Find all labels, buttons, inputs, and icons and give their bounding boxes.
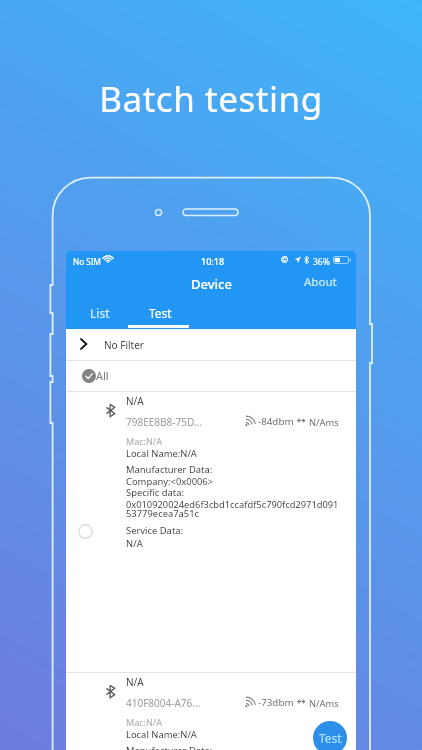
button[interactable]: Test [313,721,347,750]
staticText: 53779ecea7a51c [126,507,200,520]
staticText: Company:<0x0006> [126,475,214,488]
staticText: N/A [126,675,144,689]
staticText: 10:18 [201,255,225,267]
button[interactable]: Test [130,301,191,329]
staticText: 0x010920024ed6f3cbd1ccafdf5c790fcd2971d0… [126,498,339,511]
staticText: -84dbm [258,415,294,428]
staticText: All [96,368,109,383]
staticText: Test [319,730,342,746]
staticText: Test [149,305,172,321]
staticText: 798EE8B8-75D... [126,415,202,429]
button[interactable]: About [297,272,344,292]
staticText: N/A [126,537,143,550]
button[interactable]: List [69,301,130,329]
button[interactable]: N/A [66,672,356,750]
staticText: About [304,274,337,290]
staticText: ↔ [297,414,306,426]
staticText: Mac:N/A [126,716,162,728]
staticText: N/A [126,394,144,408]
staticText: Mac:N/A [126,435,162,447]
staticText: No Filter [104,338,144,352]
button[interactable]: No Filter [66,329,356,360]
staticText: Specific data: [126,486,184,499]
staticText: N/Ams [309,697,339,710]
staticText: 36% [313,256,330,268]
staticText: List [90,305,110,321]
staticText: ↔ [297,695,306,707]
button[interactable]: All [66,361,356,391]
staticText: Batch testing [0,75,422,123]
staticText: Service Data: [126,524,184,537]
staticText: Manufacturer Data: [126,463,213,476]
staticText: 410F8004-A76... [126,696,201,710]
staticText: N/Ams [309,416,339,429]
staticText: Local Name:N/A [126,728,197,741]
button[interactable]: N/A [66,391,356,671]
staticText: Manufacturer Data: [126,744,213,750]
staticText: Device [191,275,232,293]
staticText: -73dbm [258,696,294,709]
staticText: No SIM [73,256,102,267]
staticText: Local Name:N/A [126,447,197,460]
